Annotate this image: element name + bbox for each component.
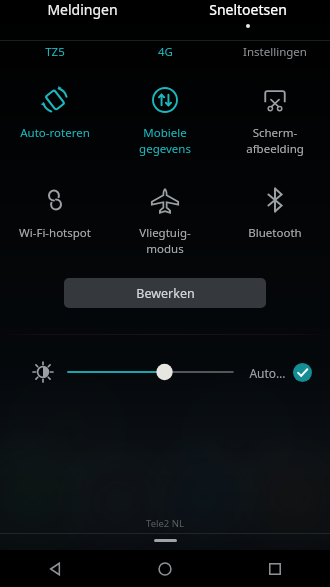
button[interactable]: Brightness — [30, 359, 56, 385]
button[interactable]: Mobiele gegevens — [110, 82, 220, 156]
staticText: Sneltoetsen — [209, 0, 287, 19]
button[interactable]: Bluetooth — [220, 182, 330, 241]
button[interactable]: Back — [0, 550, 110, 587]
staticText: Mobiele gegevens — [139, 125, 191, 156]
staticText: 4G — [158, 44, 173, 60]
button[interactable]: Instellingen — [237, 42, 313, 62]
button[interactable]: Auto-roteren — [0, 82, 110, 141]
staticText: Auto-roteren — [20, 125, 90, 141]
staticText: Wi-Fi-hotspot — [19, 225, 91, 241]
button[interactable]: Sneltoetsen — [165, 0, 330, 28]
button[interactable]: Collapse panel — [154, 539, 177, 542]
button[interactable]: Auto… — [247, 359, 314, 386]
staticText: Meldingen — [47, 0, 118, 19]
staticText: Auto… — [249, 365, 286, 381]
staticText: Instellingen — [243, 44, 307, 60]
button[interactable]: Scherm- afbeelding — [220, 82, 330, 156]
staticText: Scherm- afbeelding — [246, 125, 304, 156]
staticText: TZ5 — [45, 44, 65, 60]
staticText: Tele2 NL — [146, 517, 184, 530]
button[interactable]: Vliegtuig- modus — [110, 182, 220, 256]
button[interactable]: Recents — [220, 550, 330, 587]
button[interactable]: Wi-Fi-hotspot — [0, 182, 110, 241]
button[interactable]: Meldingen — [0, 0, 165, 28]
button[interactable]: Bewerken — [64, 278, 266, 308]
button[interactable]: Brightness slider — [66, 357, 235, 387]
staticText: Bluetooth — [248, 225, 302, 241]
staticText: Bewerken — [136, 285, 195, 302]
staticText: Vliegtuig- modus — [139, 225, 191, 256]
button[interactable]: Home — [110, 550, 220, 587]
